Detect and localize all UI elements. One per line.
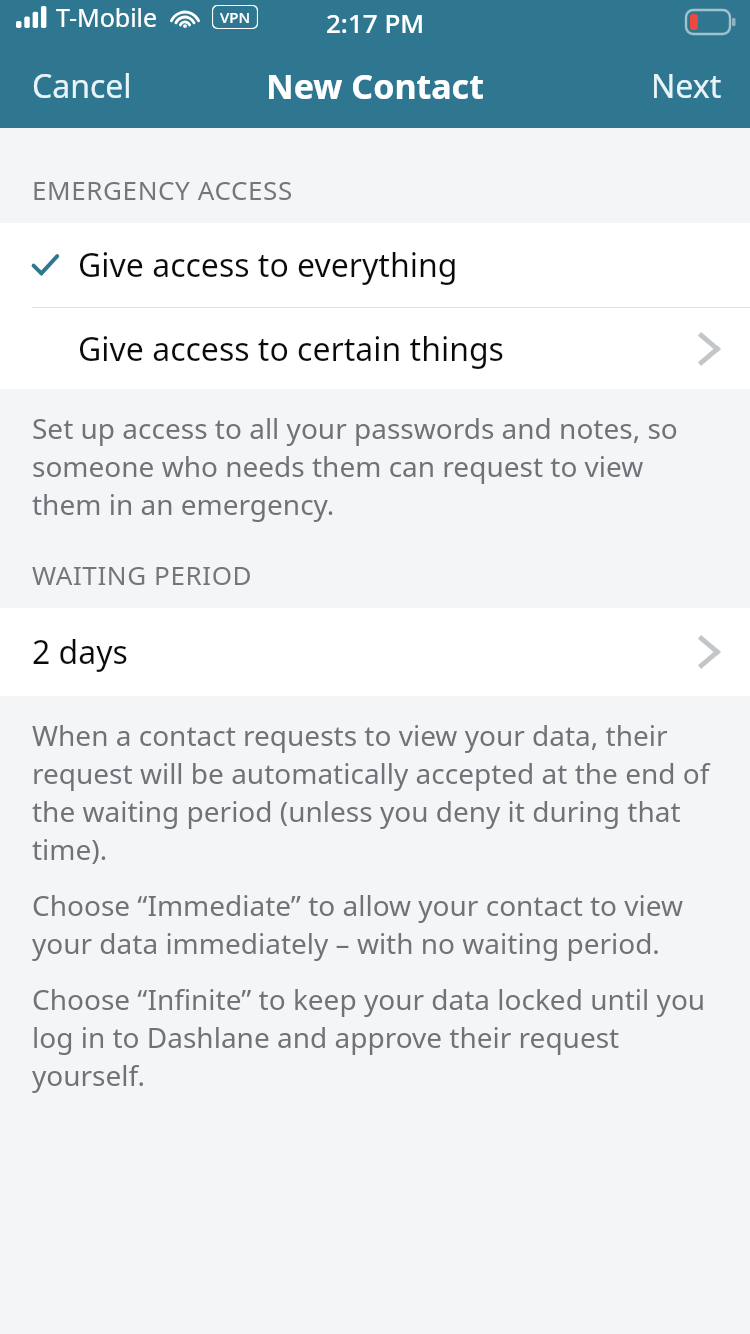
staticText: Choose “Infinite” to keep your data lock…	[32, 980, 718, 1094]
button[interactable]: Give access to everything	[0, 223, 750, 307]
staticText: VPN	[220, 7, 251, 27]
button[interactable]: Cancel	[0, 54, 152, 118]
staticText: WAITING PERIOD	[32, 557, 253, 592]
staticText: Choose “Immediate” to allow your contact…	[32, 886, 718, 962]
staticText: EMERGENCY ACCESS	[32, 172, 293, 207]
staticText: Cancel	[32, 64, 132, 108]
staticText: Give access to everything	[78, 243, 458, 287]
other: Open	[698, 332, 720, 366]
staticText: Give access to certain things	[78, 327, 698, 371]
staticText: Next	[651, 64, 722, 108]
button[interactable]: Next	[631, 54, 750, 118]
staticText: New Contact	[266, 63, 484, 109]
other: Open	[698, 635, 720, 669]
staticText: 2 days	[32, 630, 698, 674]
staticText: Set up access to all your passwords and …	[32, 409, 718, 523]
button[interactable]: 2 days	[0, 608, 750, 696]
button[interactable]: Give access to certain things	[0, 308, 750, 389]
staticText: When a contact requests to view your dat…	[32, 716, 718, 868]
staticText: T-Mobile	[56, 0, 158, 34]
staticText: 2:17 PM	[326, 5, 425, 40]
